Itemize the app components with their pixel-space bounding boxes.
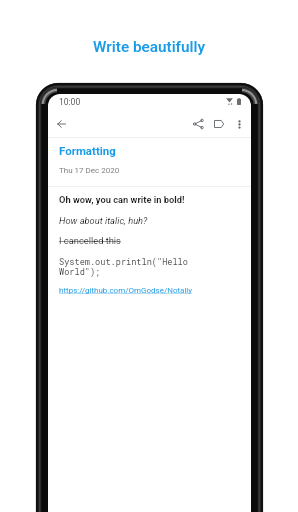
button[interactable]: Label: [209, 114, 229, 134]
staticText: System.out.println("Hello World");: [59, 256, 188, 277]
staticText: Formatting: [59, 144, 116, 157]
staticText: Thu 17 Dec 2020: [59, 166, 120, 175]
staticText: Write beautifully: [93, 38, 206, 56]
button[interactable]: More options: [229, 114, 249, 134]
staticText: Oh wow, you can write in bold!: [59, 194, 185, 205]
staticText: 10:00: [59, 97, 81, 107]
staticText: https://github.com/OmGodse/Notally: [59, 286, 193, 295]
button[interactable]: Back: [51, 114, 71, 134]
staticText: I cancelled this: [59, 235, 121, 246]
button[interactable]: Share: [188, 114, 208, 134]
staticText: How about italic, huh?: [59, 215, 148, 226]
